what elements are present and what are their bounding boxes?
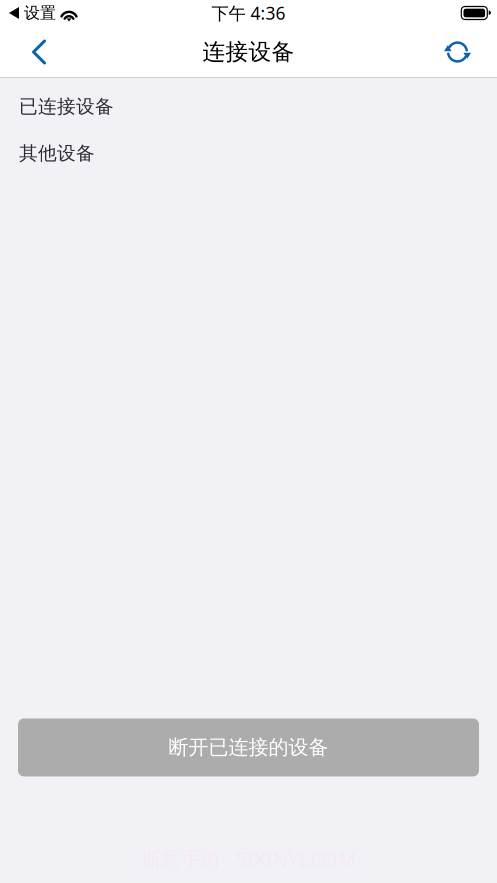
button[interactable]: Refresh	[428, 26, 497, 77]
staticText: 断开已连接的设备	[168, 735, 328, 760]
button[interactable]: Back	[0, 26, 62, 77]
staticText: 下午 4:36	[211, 1, 285, 24]
staticText: 设置	[24, 3, 56, 23]
staticText: 斯意手游 · SIXINYI.COM	[141, 845, 356, 872]
button[interactable]: 断开已连接的设备	[18, 718, 479, 776]
staticText: 其他设备	[19, 142, 95, 165]
staticText: 连接设备	[202, 38, 294, 66]
staticText: 已连接设备	[19, 95, 114, 118]
